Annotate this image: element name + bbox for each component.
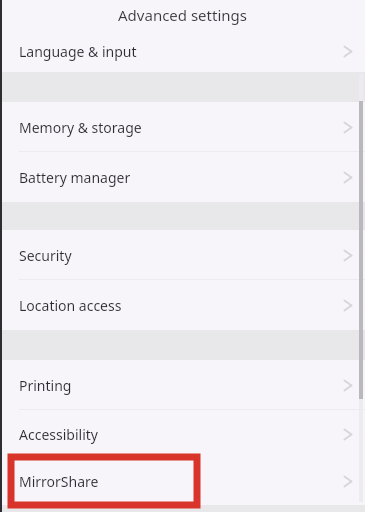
button[interactable]: Printing	[0, 360, 365, 410]
staticText: Location access	[19, 296, 122, 315]
staticText: Battery manager	[19, 168, 131, 187]
staticText: MirrorShare	[19, 472, 99, 491]
staticText: Printing	[19, 376, 72, 395]
staticText: Accessibility	[19, 425, 98, 444]
button[interactable]: Battery manager	[0, 152, 365, 202]
staticText: Language & input	[19, 42, 137, 61]
staticText: Advanced settings	[0, 5, 365, 25]
button[interactable]: Location access	[0, 280, 365, 330]
button[interactable]: Memory & storage	[0, 102, 365, 152]
button[interactable]: Language & input	[0, 30, 365, 72]
button[interactable]: Security	[0, 230, 365, 280]
button[interactable]: Accessibility	[0, 410, 365, 458]
staticText: Memory & storage	[19, 118, 142, 137]
staticText: Security	[19, 246, 72, 265]
button[interactable]: MirrorShare	[0, 458, 365, 505]
